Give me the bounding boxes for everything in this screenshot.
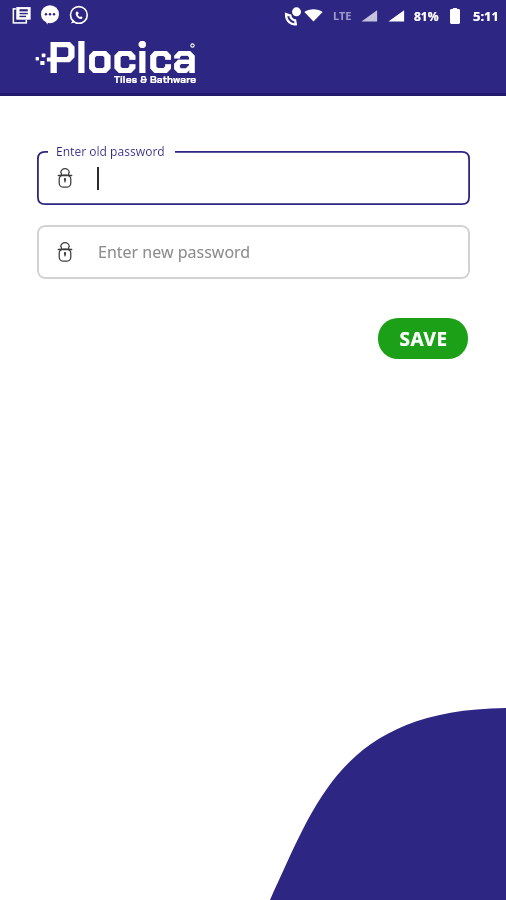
button[interactable]: SAVE [378, 318, 468, 359]
staticText: Enter new password [98, 241, 251, 263]
button[interactable]: Enter old password [37, 151, 470, 205]
staticText: 81% [414, 8, 439, 24]
staticText: SAVE [399, 326, 448, 352]
button[interactable]: Enter new password [37, 225, 470, 279]
staticText: Plocica [48, 30, 197, 86]
staticText: Enter old password [56, 143, 165, 159]
staticText: Tiles & Bathware [114, 73, 197, 86]
staticText: LTE [333, 8, 352, 23]
staticText: 5:11 [473, 7, 499, 25]
